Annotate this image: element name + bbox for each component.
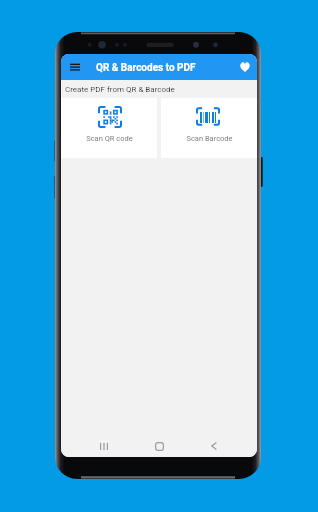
staticText: Create PDF from QR & Barcode <box>65 85 175 94</box>
staticText: Scan Barcode <box>186 134 233 143</box>
button[interactable]: Favorites <box>235 54 257 80</box>
button[interactable]: Open navigation drawer <box>66 54 85 80</box>
staticText: QR & Barcodes to PDF <box>96 62 196 74</box>
button[interactable]: Scan Barcode <box>161 98 257 158</box>
button[interactable]: Back <box>203 435 225 457</box>
button[interactable]: Scan QR code <box>61 98 157 158</box>
staticText: Scan QR code <box>86 134 133 143</box>
button[interactable]: Recent apps <box>93 435 115 457</box>
button[interactable]: Home <box>148 435 170 457</box>
